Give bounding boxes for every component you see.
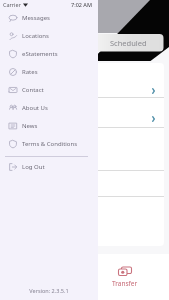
staticText: eStatements — [22, 50, 58, 58]
staticText: Scheduled — [110, 38, 147, 48]
staticText: Carrier — [3, 1, 21, 8]
staticText: Terms & Conditions — [22, 140, 78, 148]
button[interactable]: Transfer — [101, 254, 148, 300]
staticText: About Us — [22, 104, 48, 112]
button[interactable]: Locations — [0, 27, 98, 45]
staticText: Transfer — [112, 279, 138, 288]
button[interactable] — [6, 171, 164, 197]
staticText: Version: 2.3.5.1 — [0, 287, 98, 294]
button[interactable]: Contact — [0, 81, 98, 99]
staticText: Messages — [22, 14, 50, 22]
staticText: 7:02 AM — [71, 1, 93, 8]
button[interactable] — [6, 98, 164, 128]
button[interactable]: News — [0, 117, 98, 135]
button[interactable]: Scheduled — [93, 34, 164, 52]
button[interactable]: Log Out — [0, 158, 98, 176]
button[interactable]: Terms & Conditions — [0, 135, 98, 153]
button[interactable]: About Us — [0, 99, 98, 117]
staticText: Contact — [22, 86, 44, 94]
staticText: News — [22, 122, 38, 130]
button[interactable]: eStatements — [0, 45, 98, 63]
staticText: Rates — [22, 68, 38, 76]
staticText: Locations — [22, 32, 49, 40]
button[interactable] — [6, 128, 164, 171]
button[interactable]: Messages — [0, 9, 98, 27]
staticText: Log Out — [22, 163, 45, 171]
button[interactable] — [6, 63, 164, 98]
button[interactable]: Rates — [0, 63, 98, 81]
